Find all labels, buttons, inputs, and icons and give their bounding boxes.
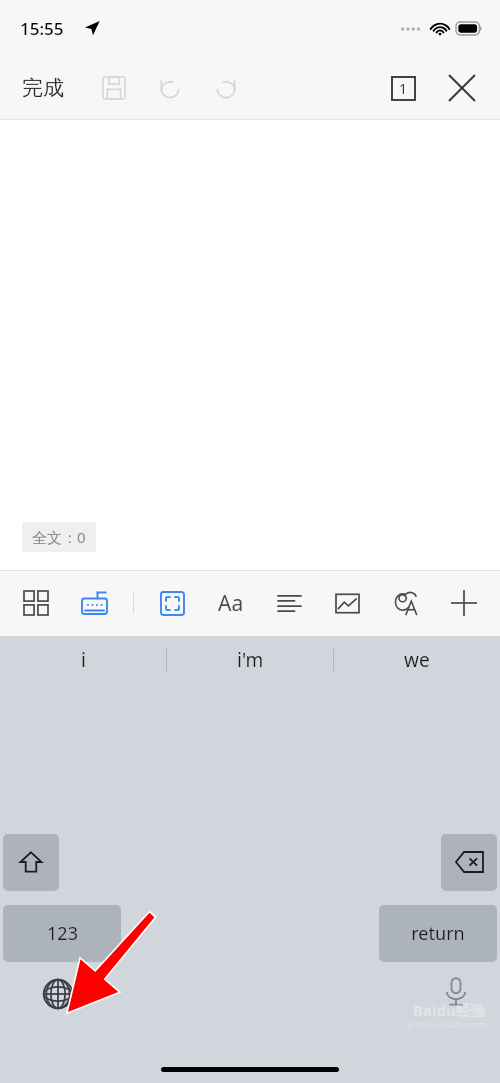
- button[interactable]: 123: [3, 905, 121, 961]
- button[interactable]: i: [0, 636, 166, 684]
- button[interactable]: Close: [442, 68, 482, 108]
- button[interactable]: return: [379, 905, 497, 961]
- button[interactable]: Keyboard: [74, 583, 114, 623]
- staticText: i: [81, 647, 86, 673]
- staticText: return: [411, 921, 465, 946]
- staticText: Baidu经验: [413, 1000, 486, 1020]
- button[interactable]: we: [334, 636, 500, 684]
- staticText: i'm: [237, 647, 264, 673]
- button[interactable]: Translate: [386, 583, 426, 623]
- staticText: 完成: [22, 75, 64, 101]
- staticText: Aa: [218, 589, 244, 618]
- button[interactable]: i'm: [167, 636, 333, 684]
- button[interactable]: Select: [152, 583, 192, 623]
- staticText: 全文：0: [32, 527, 86, 547]
- button[interactable]: Voice input: [434, 970, 478, 1014]
- button[interactable]: Redo: [206, 68, 246, 108]
- staticText: we: [404, 647, 430, 673]
- staticText: 1: [399, 79, 408, 98]
- button[interactable]: 完成: [18, 69, 68, 107]
- button[interactable]: Apps: [16, 583, 56, 623]
- button[interactable]: 全文：0: [22, 522, 96, 552]
- button[interactable]: Add: [444, 583, 484, 623]
- staticText: jingyan.baidu.com: [408, 1018, 486, 1030]
- button[interactable]: Switch keyboard: [38, 974, 78, 1014]
- button[interactable]: [441, 834, 497, 890]
- button[interactable]: Aa: [211, 583, 251, 623]
- staticText: 15:55: [20, 17, 64, 40]
- button[interactable]: Insert image: [327, 583, 367, 623]
- button[interactable]: Save: [94, 68, 134, 108]
- button[interactable]: Pages: [384, 69, 422, 107]
- button[interactable]: Align: [269, 583, 309, 623]
- staticText: 123: [47, 921, 78, 946]
- button[interactable]: [3, 834, 59, 890]
- button[interactable]: Undo: [150, 68, 190, 108]
